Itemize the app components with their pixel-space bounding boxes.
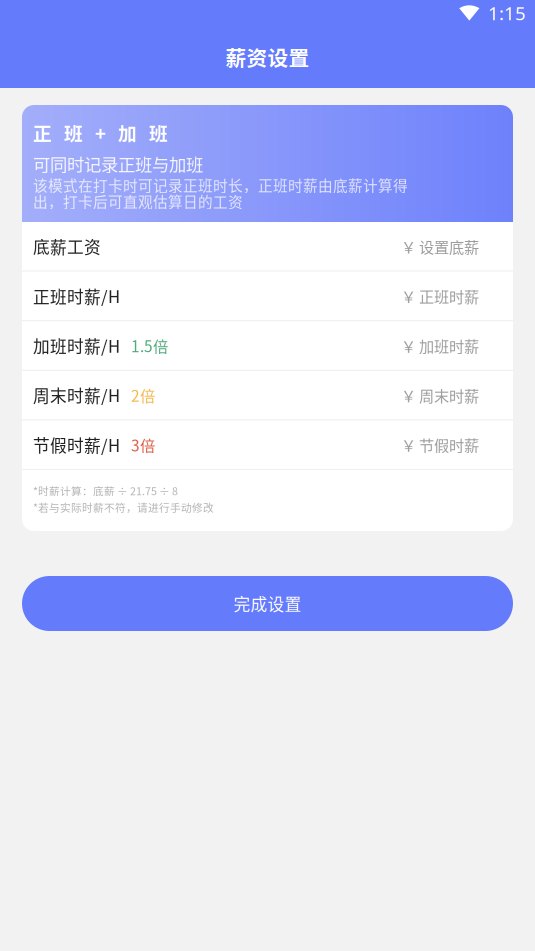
staticText: *时薪计算：底薪 ÷ 21.75 ÷ 8 (33, 483, 178, 498)
staticText: *若与实际时薪不符，请进行手动修改 (33, 499, 214, 515)
staticText: 周末时薪/H (33, 383, 120, 407)
button[interactable]: 加班时薪/H (22, 321, 513, 370)
staticText: 出，打卡后可直观估算日的工资 (33, 190, 243, 212)
button[interactable]: 完成设置 (22, 576, 513, 631)
staticText: 1:15 (488, 0, 526, 26)
staticText: 1.5倍 (131, 334, 168, 357)
staticText: ￥ 设置底薪 (401, 235, 479, 257)
staticText: ￥ 节假时薪 (401, 434, 479, 456)
button[interactable]: 周末时薪/H (22, 371, 513, 419)
staticText: 3倍 (131, 434, 155, 456)
staticText: 加班时薪/H (33, 333, 120, 357)
staticText: 2倍 (131, 384, 155, 406)
staticText: ￥ 周末时薪 (401, 384, 479, 406)
staticText: 薪资设置 (225, 42, 309, 72)
button[interactable]: 正班时薪/H (22, 272, 513, 320)
button[interactable]: 底薪工资 (22, 222, 513, 271)
button[interactable]: 节假时薪/H (22, 420, 513, 469)
staticText: 可同时记录正班与加班 (33, 151, 203, 176)
staticText: 正班时薪/H (33, 284, 120, 308)
staticText: 节假时薪/H (33, 433, 120, 457)
staticText: ￥ 加班时薪 (401, 334, 479, 356)
staticText: 正班+加班 (33, 119, 168, 146)
staticText: 该模式在打卡时可记录正班时长，正班时薪由底薪计算得 (33, 174, 408, 195)
staticText: 完成设置 (233, 591, 301, 615)
staticText: 底薪工资 (33, 234, 101, 258)
staticText: ￥ 正班时薪 (401, 285, 479, 307)
